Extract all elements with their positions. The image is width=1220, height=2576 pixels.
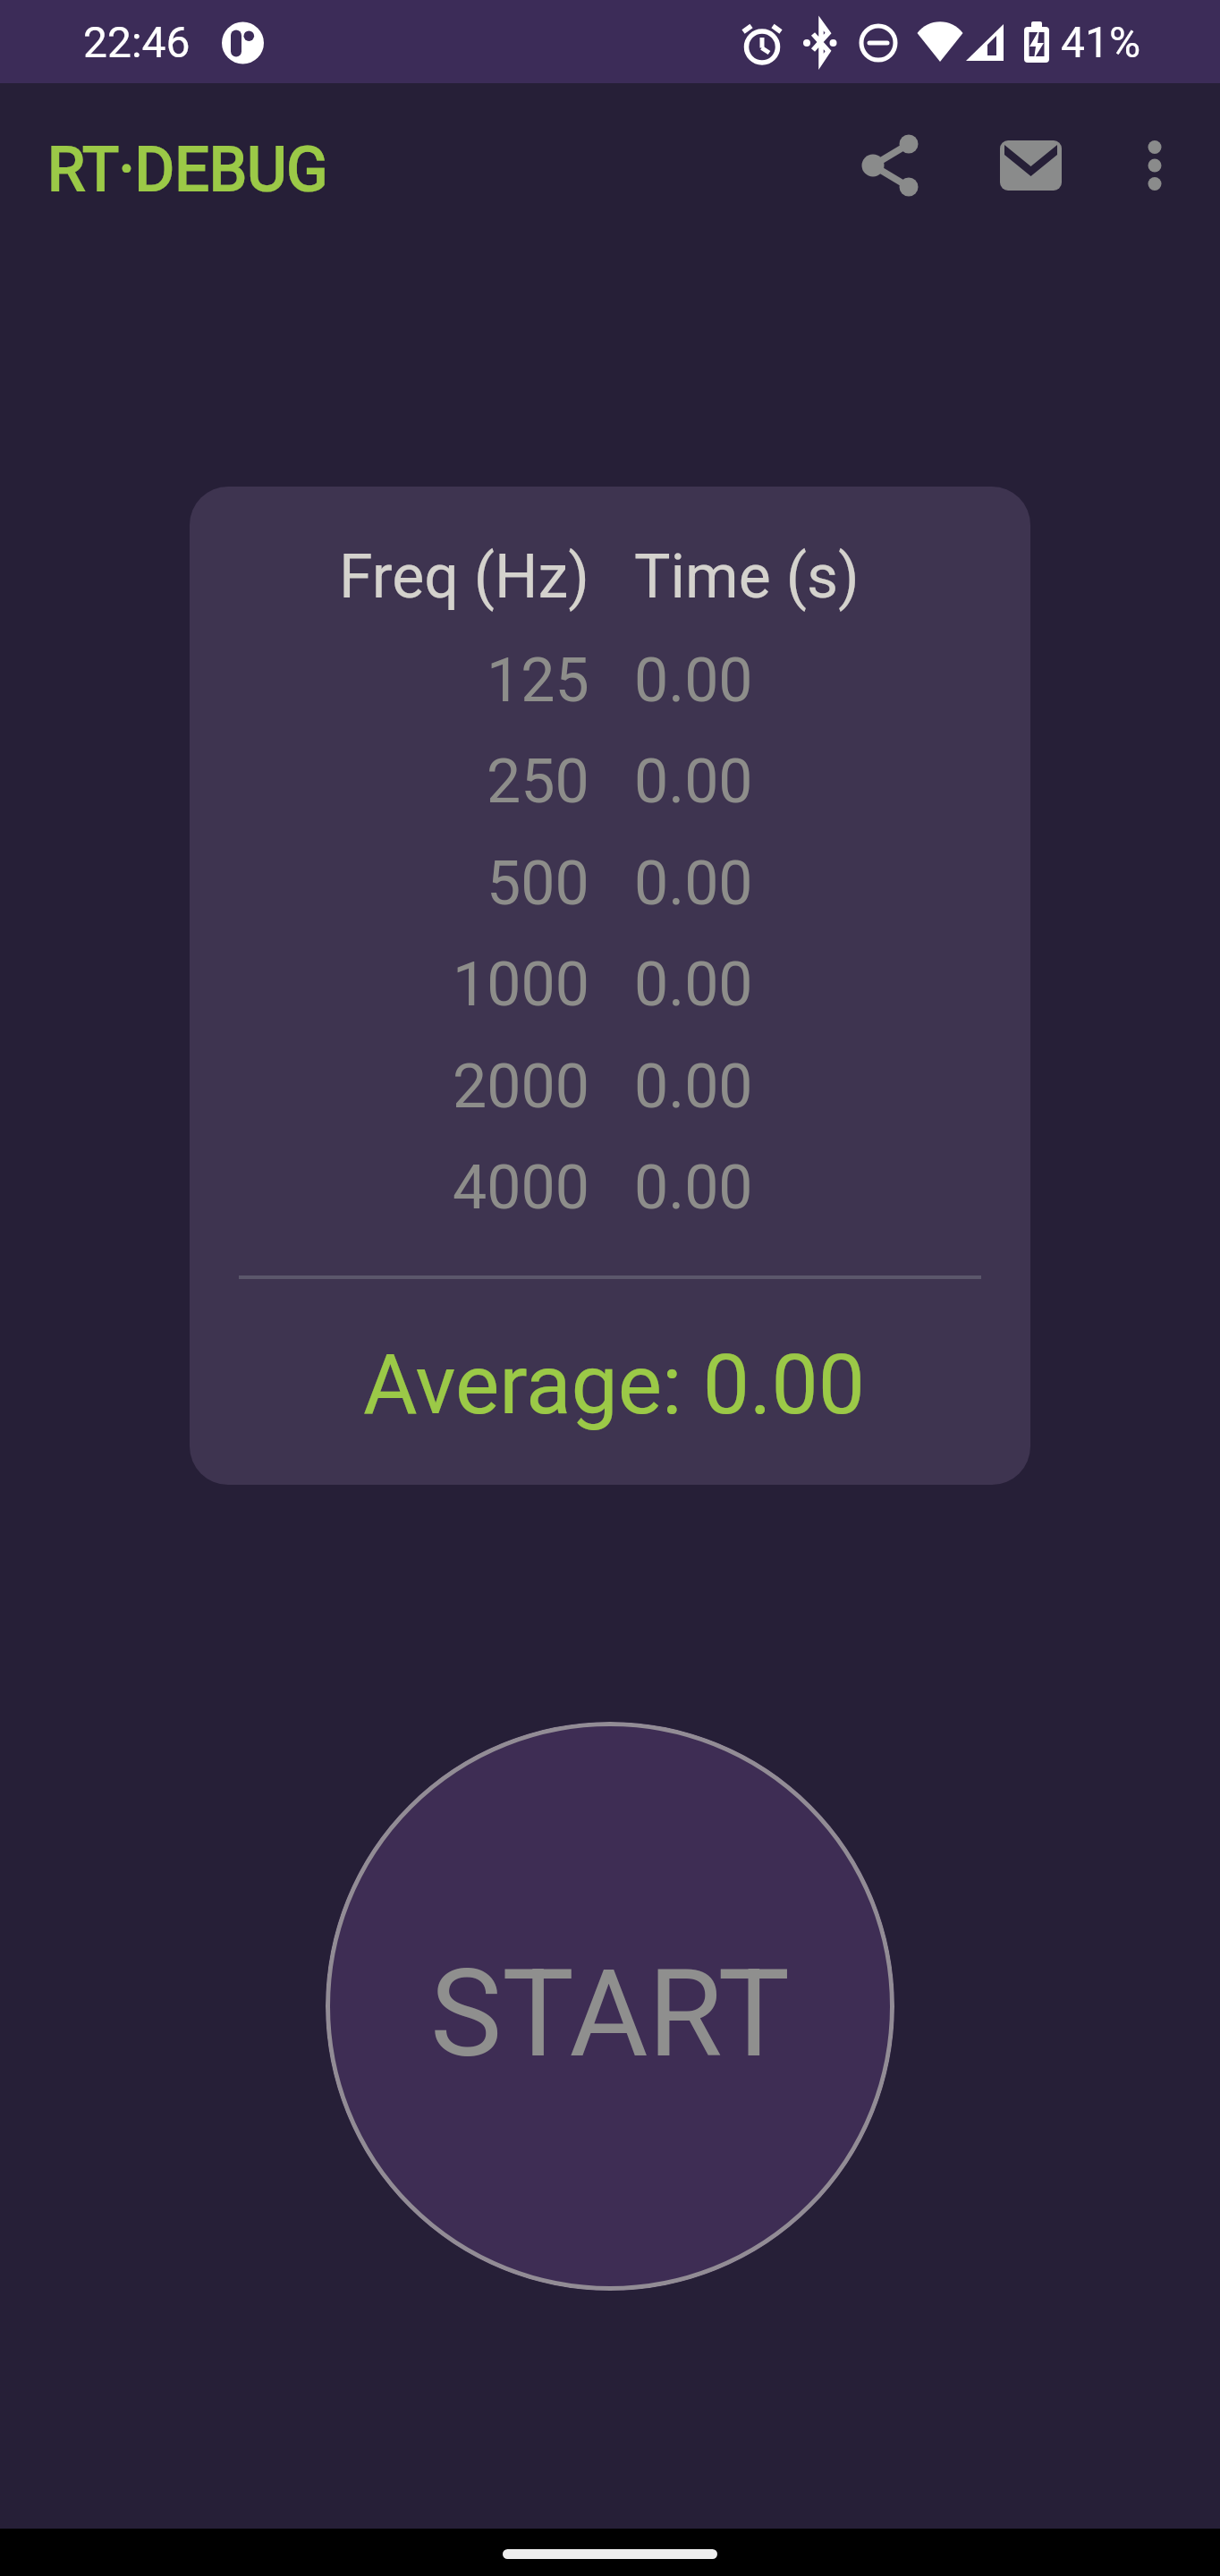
staticText: 0.00 [634, 645, 753, 716]
staticText: Time (s) [634, 541, 860, 613]
staticText: 250 [487, 746, 589, 818]
staticText: 41% [1061, 17, 1141, 67]
staticText: 0.00 [634, 1051, 753, 1123]
staticText: 0.00 [634, 949, 753, 1021]
staticText: 500 [487, 848, 589, 919]
staticText: 1000 [453, 949, 589, 1021]
button[interactable]: More options [1094, 105, 1216, 226]
staticText: 0.00 [634, 848, 753, 919]
staticText: 4000 [453, 1152, 589, 1224]
staticText: 125 [487, 645, 589, 716]
staticText: 22:46 [83, 17, 191, 67]
button[interactable]: Share [830, 105, 952, 226]
staticText: 2000 [453, 1051, 589, 1123]
staticText: RT·DEBUG [47, 134, 328, 206]
staticText: Average: 0.00 [363, 1336, 865, 1434]
button[interactable]: START [326, 1722, 894, 2291]
staticText: 0.00 [634, 746, 753, 818]
staticText: Freq (Hz) [339, 541, 589, 613]
button[interactable]: Email [970, 105, 1091, 226]
staticText: 0.00 [634, 1152, 753, 1224]
staticText: START [430, 1944, 791, 2085]
